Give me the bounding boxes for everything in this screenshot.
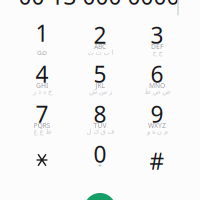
button[interactable]: 9	[128, 101, 185, 139]
staticText: #	[149, 146, 164, 176]
staticText: +	[98, 161, 102, 170]
staticText: ز س ش	[88, 88, 111, 95]
staticText: 7	[35, 99, 48, 129]
staticText: ظ ع غ	[33, 128, 51, 135]
staticText: PQRS	[33, 121, 50, 130]
button[interactable]: 6	[128, 61, 185, 99]
staticText: 8	[93, 99, 106, 129]
staticText: 00 13 000 0000	[18, 0, 179, 11]
staticText: MNO	[149, 81, 165, 90]
button[interactable]: 3	[128, 22, 185, 60]
button[interactable]: 7	[13, 101, 70, 139]
button[interactable]: 2	[71, 22, 128, 60]
button[interactable]: 8	[71, 101, 128, 139]
staticText: ج ح	[152, 49, 162, 56]
button[interactable]: Star	[13, 141, 70, 179]
staticText: ABC	[94, 42, 106, 51]
staticText: 4	[35, 59, 48, 89]
staticText: 6	[150, 59, 163, 89]
staticText: م ن ه و	[146, 128, 167, 135]
button[interactable]: 5	[71, 61, 128, 99]
button[interactable]: 0	[71, 141, 128, 179]
staticText: 0	[93, 139, 106, 169]
staticText: 5	[93, 59, 106, 89]
staticText: 9	[150, 99, 163, 129]
staticText: TUV	[93, 121, 106, 130]
staticText: 1	[35, 18, 48, 48]
staticText: 3	[150, 20, 163, 50]
button[interactable]: 4	[13, 61, 70, 99]
staticText: WXYZ	[148, 121, 166, 130]
staticText: ف ق ك ل	[86, 128, 114, 135]
button[interactable]: Call	[84, 193, 116, 200]
staticText: خ د ذ ر	[32, 88, 51, 95]
staticText: GHI	[36, 81, 48, 90]
staticText: ا ب ت ث	[87, 49, 113, 56]
button[interactable]: #	[128, 142, 185, 180]
button[interactable]: 1	[13, 22, 70, 60]
staticText: 2	[93, 20, 106, 50]
staticText: ص ض ط	[144, 88, 170, 95]
staticText: DEF	[151, 42, 163, 51]
staticText: JKL	[95, 81, 104, 90]
